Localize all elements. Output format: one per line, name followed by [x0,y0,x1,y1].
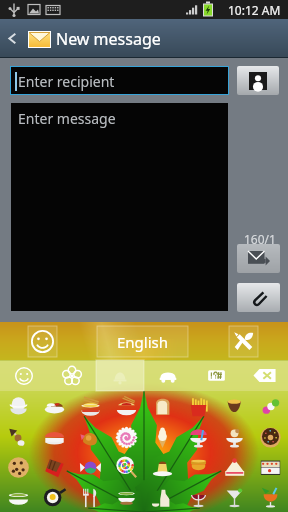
button[interactable]: Lollipop [108,452,144,482]
staticText: Enter message [18,109,116,128]
button[interactable]: Travel [144,360,192,391]
button[interactable]: Backspace [240,360,288,391]
button[interactable]: Shaved ice [180,422,216,452]
button[interactable]: Fork and knife [72,482,108,512]
button[interactable]: Candy [72,452,108,482]
button[interactable]: Sweet potato [216,391,252,422]
button[interactable]: Emoticons [0,360,48,391]
button[interactable]: Bread [144,391,180,422]
button[interactable]: Symbols [192,360,240,391]
button[interactable]: Attach [237,283,280,312]
button[interactable]: Cookie [0,452,36,482]
button[interactable]: Settings [229,326,258,357]
button[interactable]: Back [0,19,24,58]
button[interactable]: Send [237,244,280,273]
button[interactable]: Fries [180,391,216,422]
staticText: Enter recipient [18,72,115,91]
button[interactable]: Bento [252,452,288,482]
button[interactable]: Sake [144,482,180,512]
button[interactable]: Fried shrimp [72,422,108,452]
button[interactable]: Teacup [108,482,144,512]
button[interactable]: Rice [0,391,36,422]
button[interactable]: Dango [252,391,288,422]
button[interactable]: Chocolate [36,452,72,482]
button[interactable]: Contacts [237,66,279,95]
staticText: 10:12 AM [228,2,281,18]
staticText: English [117,332,169,352]
button[interactable]: Nature [48,360,96,391]
button[interactable]: Ramen [72,391,108,422]
button[interactable]: Soft ice cream [144,422,180,452]
button[interactable]: Enter message [11,103,228,311]
button[interactable]: Emoticons [28,326,57,357]
button[interactable]: Curry [36,391,72,422]
button[interactable]: Ice cream [216,422,252,452]
button[interactable]: Doughnut [252,422,288,452]
button[interactable]: Oden [0,422,36,452]
staticText: 160/1 [244,231,276,247]
button[interactable]: Objects [96,360,144,391]
button[interactable]: English [97,326,188,357]
button[interactable]: Enter recipient [11,67,228,94]
button[interactable]: Custard [144,452,180,482]
staticText: New message [56,28,161,50]
button[interactable]: Fish cake [108,422,144,452]
button[interactable]: Spaghetti [108,391,144,422]
button[interactable]: Fried egg [36,482,72,512]
button[interactable]: Tropical drink [252,482,288,512]
button[interactable]: Honey pot [180,452,216,482]
button[interactable]: Stew [0,482,36,512]
button[interactable]: Cocktail [216,482,252,512]
button[interactable]: Shortcake [216,452,252,482]
button[interactable]: Wine [180,482,216,512]
button[interactable]: Sushi [36,422,72,452]
